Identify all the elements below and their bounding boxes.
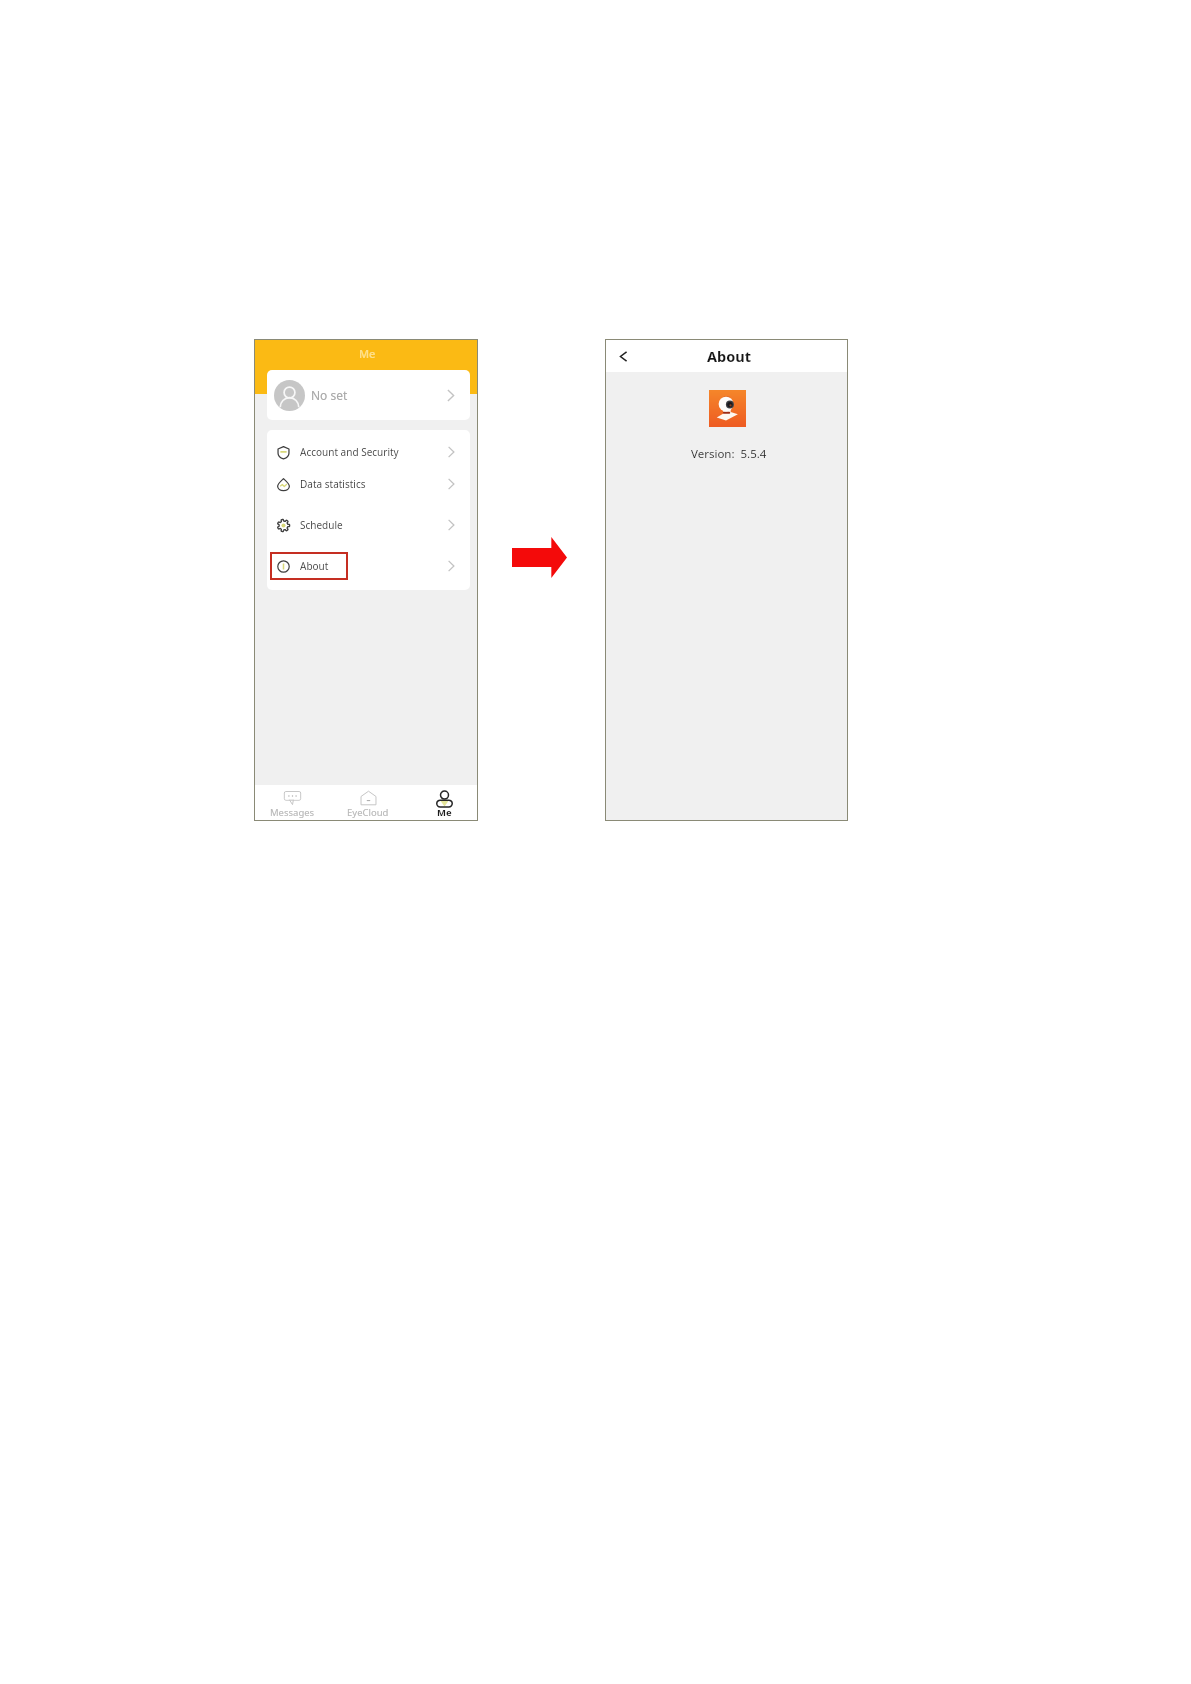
staticText: About	[707, 346, 751, 366]
button[interactable]: Messages	[259, 785, 325, 820]
staticText: Messages	[270, 806, 315, 819]
button[interactable]: Me	[411, 785, 477, 820]
staticText: Me	[437, 806, 452, 819]
staticText: Account and Security	[300, 445, 399, 459]
staticText: Schedule	[300, 518, 343, 532]
button[interactable]: EyeCloud	[335, 785, 401, 820]
staticText: No set	[311, 387, 348, 403]
button[interactable]: About	[267, 550, 470, 582]
staticText: Data statistics	[300, 477, 366, 491]
button[interactable]: Schedule	[267, 509, 470, 541]
staticText: EyeCloud	[347, 806, 389, 819]
button[interactable]: Account and Security	[267, 436, 470, 468]
button[interactable]: Back	[613, 340, 635, 372]
staticText: About	[300, 559, 329, 573]
staticText: Me	[359, 346, 376, 361]
staticText: Version: 5.5.4	[691, 446, 767, 462]
button[interactable]: Data statistics	[267, 468, 470, 500]
button[interactable]: No set	[267, 370, 470, 420]
